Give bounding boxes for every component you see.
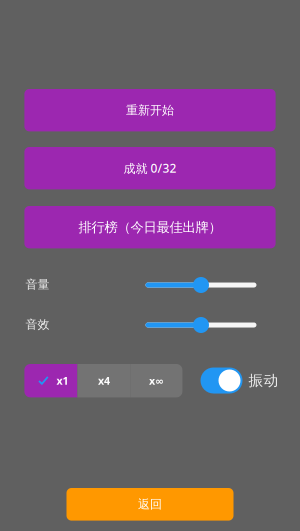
button[interactable]: x4 [77, 364, 130, 397]
staticText: 音效 [25, 317, 49, 332]
button[interactable]: x1 [24, 364, 77, 397]
staticText: 振动 [248, 371, 278, 389]
staticText: 音量 [25, 277, 49, 292]
staticText: 成就 0/32 [123, 160, 176, 176]
staticText: x1 [56, 374, 68, 388]
button[interactable]: 成就 0/32 [24, 147, 276, 189]
staticText: 排行榜（今日最佳出牌） [78, 219, 221, 235]
button[interactable]: 排行榜（今日最佳出牌） [24, 206, 276, 248]
button[interactable]: x∞ [130, 364, 182, 397]
button[interactable]: 重新开始 [24, 89, 276, 131]
staticText: 重新开始 [126, 103, 174, 117]
staticText: x4 [98, 374, 110, 388]
staticText: 返回 [138, 497, 162, 512]
button[interactable]: 振动 [200, 364, 278, 397]
staticText: x∞ [149, 374, 164, 388]
button[interactable]: 返回 [66, 488, 233, 521]
